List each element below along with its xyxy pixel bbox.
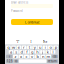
staticText: I: [30, 40, 31, 44]
staticText: h: [36, 49, 38, 54]
staticText: “I”: [16, 40, 19, 44]
staticText: w: [12, 45, 15, 50]
staticText: s: [15, 49, 17, 54]
staticText: 123: [7, 59, 13, 63]
staticText: f: [26, 49, 27, 54]
button[interactable]: Continue: [11, 19, 53, 25]
staticText: z: [14, 54, 16, 59]
staticText: ⇧: [8, 55, 10, 58]
staticText: Password: [11, 9, 23, 13]
staticText: m: [46, 54, 50, 59]
staticText: o: [49, 45, 51, 50]
staticText: ☺: [15, 60, 18, 63]
staticText: t: [29, 45, 30, 50]
staticText: v: [31, 54, 33, 59]
staticText: ⌫: [53, 55, 57, 58]
staticText: Email address: [11, 1, 28, 4]
staticText: n: [42, 54, 44, 59]
staticText: u: [39, 45, 41, 50]
staticText: y: [34, 45, 36, 50]
staticText: q: [7, 45, 9, 50]
staticText: a: [10, 49, 12, 54]
staticText: g: [31, 49, 33, 54]
staticText: i: [45, 45, 46, 50]
staticText: c: [25, 54, 27, 59]
staticText: x: [20, 54, 22, 59]
staticText: j: [42, 49, 43, 54]
staticText: p: [55, 45, 57, 50]
staticText: d: [20, 49, 22, 54]
staticText: k: [47, 49, 49, 54]
staticText: b: [36, 54, 38, 59]
staticText: e: [18, 45, 20, 50]
staticText: return: [48, 59, 57, 63]
staticText: l: [52, 49, 53, 54]
staticText: The: [43, 40, 48, 44]
staticText: r: [23, 45, 25, 50]
staticText: Continue: [24, 19, 39, 25]
